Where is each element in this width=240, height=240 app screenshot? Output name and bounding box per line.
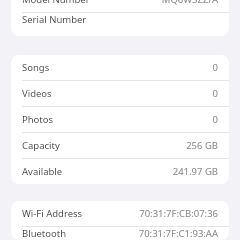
button[interactable]: Bluetooth [11, 227, 229, 240]
staticText: Serial Number [22, 13, 87, 23]
button[interactable]: Model Number [11, 0, 229, 12]
button[interactable]: Videos [11, 81, 229, 106]
staticText: 0 [212, 113, 218, 126]
button[interactable]: Songs [11, 55, 229, 80]
staticText: 0 [212, 87, 218, 100]
staticText: Videos [22, 87, 52, 100]
staticText: Songs [22, 61, 50, 74]
staticText: 70:31:7F:CB:07:36 [139, 207, 218, 220]
button[interactable]: Capacity [11, 133, 229, 158]
button[interactable]: Photos [11, 107, 229, 132]
staticText: Wi-Fi Address [22, 207, 83, 220]
staticText: Capacity [22, 139, 60, 152]
button[interactable]: Available [11, 159, 229, 184]
staticText: MQ6W3ZZ/A [161, 0, 218, 6]
staticText: Available [22, 165, 63, 178]
button[interactable]: Serial Number [11, 13, 229, 23]
staticText: Bluetooth [22, 227, 67, 240]
staticText: 70:31:7F:C1:93:AA [138, 227, 218, 240]
staticText: 256 GB [186, 139, 218, 152]
staticText: 241.97 GB [172, 165, 218, 178]
button[interactable]: Wi-Fi Address [11, 201, 229, 226]
staticText: 0 [212, 61, 218, 74]
staticText: Photos [22, 113, 54, 126]
staticText: Model Number [22, 0, 90, 6]
